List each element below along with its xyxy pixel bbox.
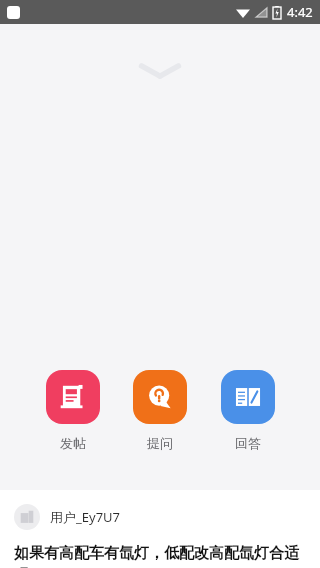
- staticText: 如果有高配车有氙灯，低配改高配氙灯合适吗？: [14, 544, 306, 568]
- staticText: 提问: [147, 435, 173, 451]
- staticText: 用户_Ey7U7: [50, 508, 121, 526]
- button[interactable]: 提问: [133, 370, 187, 451]
- staticText: 发帖: [60, 435, 86, 451]
- other: 回答: [234, 383, 262, 411]
- staticText: 4:42: [287, 3, 313, 21]
- other: 提问: [146, 383, 174, 411]
- button[interactable]: 回答: [221, 370, 275, 451]
- other: 发帖: [59, 383, 87, 411]
- staticText: 回答: [235, 435, 261, 451]
- button[interactable]: 发帖: [46, 370, 100, 451]
